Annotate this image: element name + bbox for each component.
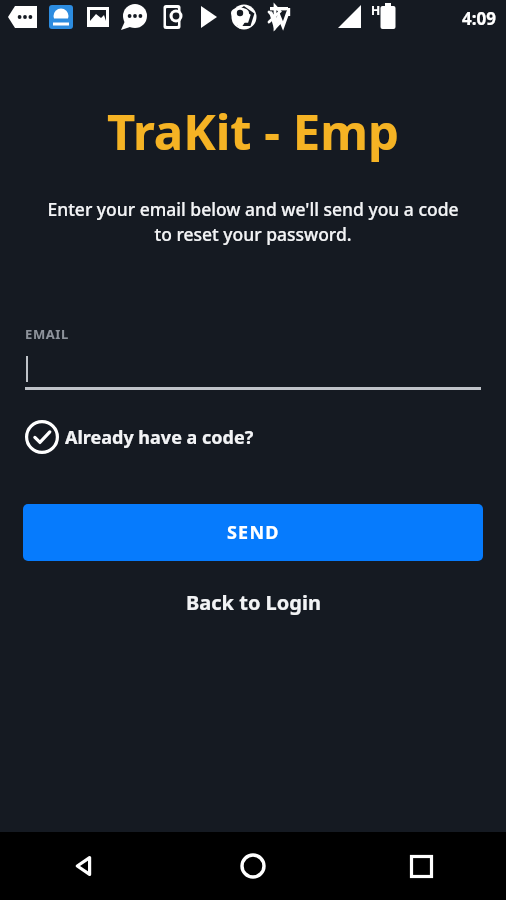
button[interactable]: Back to Login <box>172 581 335 624</box>
staticText: EMAIL <box>25 325 69 343</box>
staticText: Enter your email below and we'll send yo… <box>38 197 468 247</box>
button[interactable]: Home <box>168 832 337 900</box>
button[interactable] <box>25 351 481 387</box>
staticText: Back to Login <box>186 589 321 616</box>
button[interactable]: Already have a code? <box>23 416 256 458</box>
button[interactable]: Back <box>0 832 168 900</box>
button[interactable]: Recent apps <box>337 832 506 900</box>
staticText: TraKit - Emp <box>107 98 399 165</box>
button[interactable]: SEND <box>23 504 483 561</box>
staticText: Already have a code? <box>65 425 254 450</box>
staticText: 4:09 <box>462 7 496 30</box>
staticText: SEND <box>227 520 280 545</box>
staticText: H <box>371 2 381 18</box>
